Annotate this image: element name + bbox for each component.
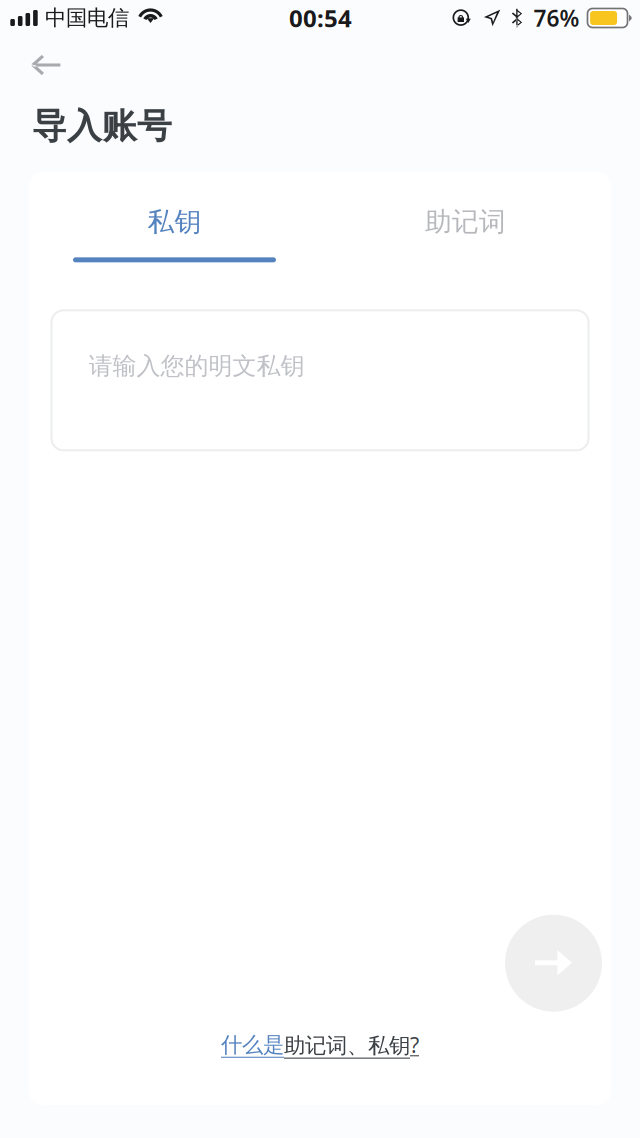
button[interactable]: Next	[505, 915, 602, 1012]
staticText: 助记词	[425, 206, 506, 238]
button[interactable]: 什么是	[221, 1023, 419, 1067]
staticText: 助记词、私钥?	[284, 1031, 419, 1059]
staticText: 76%	[533, 3, 579, 33]
staticText: 00:54	[289, 2, 352, 34]
staticText: 私钥	[147, 206, 201, 238]
staticText: 请输入您的明文私钥	[88, 351, 304, 381]
staticText: 导入账号	[32, 105, 172, 148]
button[interactable]: 私钥	[29, 172, 320, 262]
staticText: 什么是	[221, 1032, 284, 1058]
staticText: 中国电信	[45, 5, 129, 31]
button[interactable]: Back	[0, 36, 79, 80]
button[interactable]: 助记词	[320, 172, 611, 262]
